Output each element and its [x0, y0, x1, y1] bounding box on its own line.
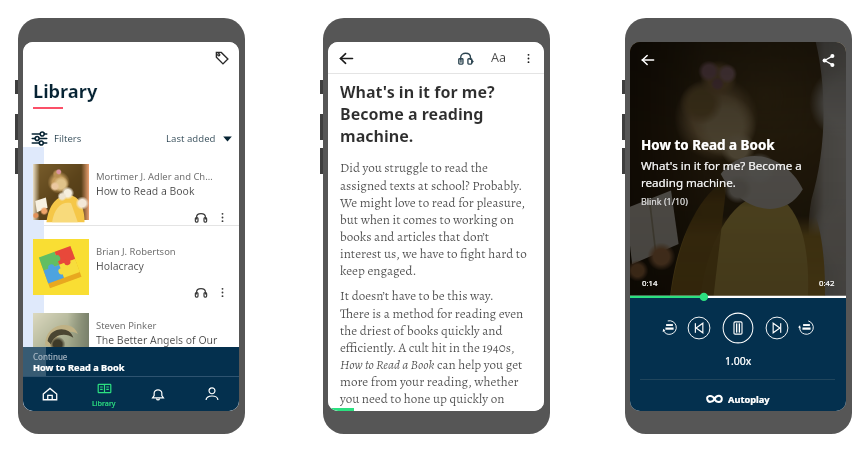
staticText: Blink (1/10) [641, 195, 688, 207]
staticText: Mortimer J. Adler and Ch… [96, 170, 216, 183]
button[interactable]: Next [765, 316, 789, 340]
button[interactable]: Listen to audio [456, 48, 476, 68]
button[interactable]: Rewind 15 seconds [661, 319, 678, 336]
button[interactable]: Last added [166, 132, 232, 145]
staticText: How to Read a Book [641, 136, 775, 154]
button[interactable]: Library [77, 377, 131, 411]
staticText: 0:14 [642, 278, 658, 289]
staticText: Continue [33, 351, 68, 362]
staticText: What's in it for me? Become a reading ma… [641, 158, 808, 190]
button[interactable]: Home [23, 377, 77, 411]
button[interactable]: Previous [687, 316, 711, 340]
button[interactable]: Tags [210, 46, 234, 70]
staticText: It doesn’t have to be this way. There is… [340, 287, 527, 411]
staticText: Aa [491, 49, 507, 66]
button[interactable]: Profile [185, 377, 239, 411]
staticText: Last added [166, 132, 216, 145]
button[interactable]: Listen [194, 285, 208, 299]
staticText: Autoplay [728, 393, 770, 406]
button[interactable]: Share [818, 50, 838, 70]
button[interactable]: Back [638, 50, 658, 70]
staticText: Library [33, 79, 98, 104]
staticText: Holacracy [96, 259, 239, 273]
staticText: The Better Angels of Our [96, 333, 239, 347]
button[interactable]: Notifications [131, 377, 185, 411]
button[interactable]: Back [336, 48, 356, 68]
staticText: Did you struggle to read the assigned te… [340, 159, 527, 279]
button[interactable]: Autoplay [630, 388, 846, 410]
staticText: Filters [54, 132, 82, 145]
staticText: 0:42 [819, 278, 835, 289]
button[interactable]: Aa [488, 49, 510, 66]
staticText: What's in it for me? Become a reading ma… [340, 81, 527, 147]
staticText: Steven Pinker [96, 319, 216, 332]
button[interactable]: Forward 15 seconds [798, 319, 815, 336]
button[interactable]: Filters [32, 131, 82, 146]
button[interactable]: More options [215, 285, 229, 299]
staticText: How to Read a Book [96, 184, 239, 198]
staticText: How to Read a Book [33, 361, 125, 374]
button[interactable]: Listen [194, 210, 208, 224]
button[interactable]: More options [519, 49, 537, 67]
button[interactable]: More options [215, 210, 229, 224]
button[interactable]: 1.00x [719, 352, 758, 370]
staticText: Library [92, 398, 116, 408]
button[interactable]: Pause [722, 312, 754, 344]
staticText: Brian J. Robertson [96, 245, 216, 258]
